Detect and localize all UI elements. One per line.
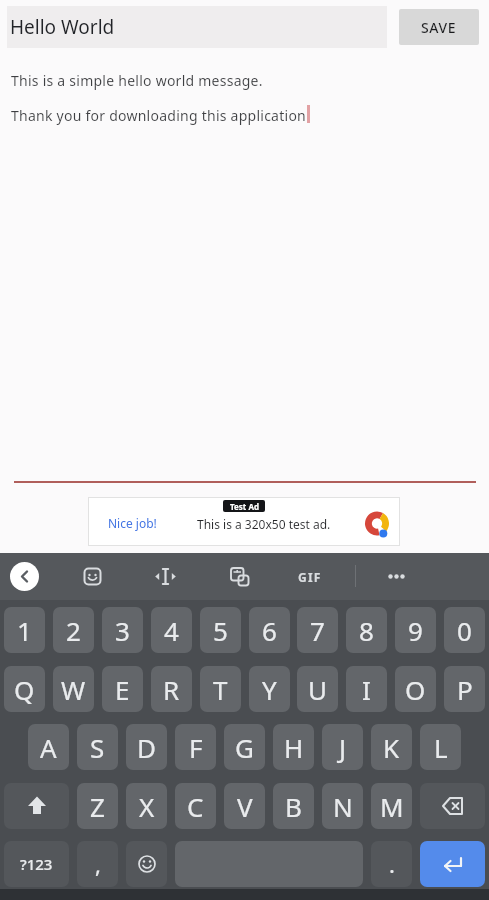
staticText: Test Ad [230, 501, 259, 512]
button[interactable]: . [371, 841, 412, 887]
button[interactable]: GIF [290, 560, 330, 593]
button[interactable]: 6 [249, 607, 290, 653]
staticText: R [163, 672, 180, 707]
staticText: Hello World [10, 14, 115, 40]
staticText: 3 [115, 613, 130, 648]
button[interactable]: E [102, 666, 143, 712]
button[interactable]: Z [77, 783, 118, 829]
staticText: O [405, 672, 426, 707]
button[interactable]: K [371, 724, 412, 770]
button[interactable]: P [444, 666, 485, 712]
staticText: F [189, 730, 203, 765]
button[interactable]: J [322, 724, 363, 770]
button[interactable]: G [224, 724, 265, 770]
button[interactable] [224, 561, 255, 592]
staticText: G [235, 730, 254, 765]
staticText: . [389, 849, 395, 879]
button[interactable]: 0 [444, 607, 485, 653]
staticText: 2 [66, 613, 81, 648]
staticText: C [187, 789, 204, 824]
button[interactable]: V [224, 783, 265, 829]
staticText: This is a 320x50 test ad. [197, 516, 331, 532]
button[interactable]: F [175, 724, 216, 770]
staticText: S [90, 730, 105, 765]
staticText: Thank you for downloading this applicati… [11, 106, 311, 125]
button[interactable]: 1 [4, 607, 45, 653]
staticText: 9 [408, 613, 423, 648]
button[interactable]: B [273, 783, 314, 829]
button[interactable]: Y [249, 666, 290, 712]
staticText: P [457, 672, 473, 707]
button[interactable]: , [77, 841, 118, 887]
staticText: T [213, 672, 228, 707]
button[interactable]: 4 [151, 607, 192, 653]
button[interactable]: Q [4, 666, 45, 712]
staticText: H [284, 730, 304, 765]
button[interactable]: U [297, 666, 338, 712]
staticText: W [61, 672, 86, 707]
button[interactable]: 7 [297, 607, 338, 653]
staticText: I [362, 672, 371, 707]
staticText: J [339, 730, 347, 765]
staticText: 5 [213, 613, 228, 648]
button[interactable]: X [126, 783, 167, 829]
button[interactable]: T [200, 666, 241, 712]
staticText: 6 [262, 613, 277, 648]
button[interactable]: SAVE [399, 9, 479, 45]
button[interactable] [10, 562, 39, 591]
staticText: Y [262, 672, 277, 707]
button[interactable]: Hello World [7, 6, 387, 48]
button[interactable] [381, 561, 412, 592]
staticText: K [383, 730, 400, 765]
staticText: B [285, 789, 302, 824]
staticText: E [115, 672, 130, 707]
button[interactable]: 8 [346, 607, 387, 653]
button[interactable]: M [371, 783, 412, 829]
button[interactable] [77, 561, 108, 592]
staticText: ?123 [20, 854, 53, 874]
staticText: X [139, 789, 155, 824]
staticText: M [380, 789, 404, 824]
staticText: Q [14, 672, 35, 707]
button[interactable]: I [346, 666, 387, 712]
staticText: Nice job! [108, 515, 157, 531]
staticText: A [40, 730, 57, 765]
staticText: 1 [17, 613, 32, 648]
button[interactable] [150, 561, 181, 592]
staticText: 8 [359, 613, 374, 648]
staticText: V [237, 789, 253, 824]
staticText: D [137, 730, 156, 765]
button[interactable]: 9 [395, 607, 436, 653]
button[interactable] [420, 783, 485, 829]
staticText: 7 [310, 613, 325, 648]
staticText: Z [90, 789, 105, 824]
staticText: This is a simple hello world message. [11, 71, 263, 90]
button[interactable]: 5 [200, 607, 241, 653]
button[interactable]: W [53, 666, 94, 712]
button[interactable]: A [28, 724, 69, 770]
button[interactable] [88, 497, 400, 546]
button[interactable] [420, 841, 485, 887]
button[interactable]: C [175, 783, 216, 829]
button[interactable]: L [420, 724, 461, 770]
button[interactable] [4, 783, 69, 829]
button[interactable]: R [151, 666, 192, 712]
staticText: GIF [298, 569, 322, 585]
button[interactable]: O [395, 666, 436, 712]
button[interactable] [126, 841, 167, 887]
button[interactable]: 2 [53, 607, 94, 653]
button[interactable]: H [273, 724, 314, 770]
button[interactable]: S [77, 724, 118, 770]
staticText: SAVE [421, 18, 457, 37]
staticText: U [308, 672, 328, 707]
button[interactable]: N [322, 783, 363, 829]
button[interactable]: D [126, 724, 167, 770]
staticText: 0 [457, 613, 472, 648]
staticText: 4 [164, 613, 179, 648]
staticText: N [333, 789, 353, 824]
staticText: , [95, 849, 101, 879]
button[interactable]: 3 [102, 607, 143, 653]
button[interactable]: ?123 [4, 841, 69, 887]
staticText: L [434, 730, 448, 765]
